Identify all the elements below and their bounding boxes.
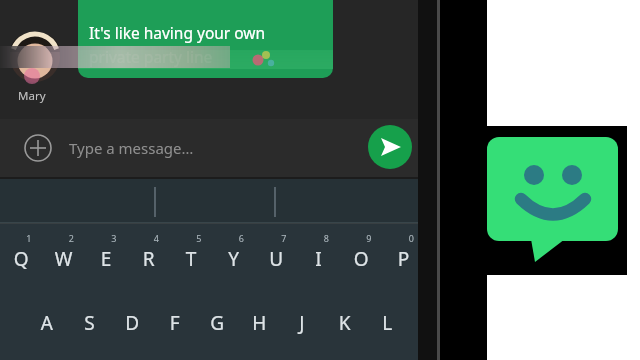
button[interactable]: Send bbox=[368, 125, 412, 169]
button[interactable]: chomp SMS app icon bbox=[487, 126, 627, 275]
button[interactable]: Add attachment bbox=[22, 132, 54, 164]
button[interactable] bbox=[60, 126, 360, 170]
